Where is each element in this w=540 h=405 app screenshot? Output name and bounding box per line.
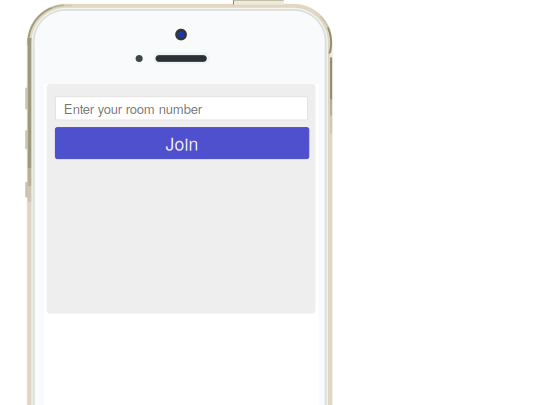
staticText: Enter your room number xyxy=(64,99,202,118)
staticText: Join xyxy=(166,130,199,156)
button[interactable]: Enter your room number xyxy=(0,0,540,405)
button[interactable]: Join xyxy=(0,0,540,405)
